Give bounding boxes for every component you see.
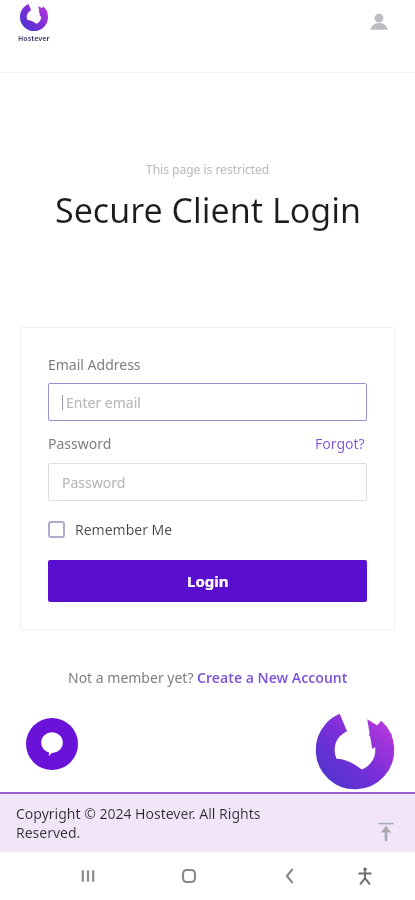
staticText: Email Address	[48, 355, 141, 374]
staticText: Login	[187, 571, 229, 591]
staticText: Remember Me	[75, 520, 173, 539]
button[interactable]: Open chat	[26, 718, 78, 770]
button[interactable]: Back	[268, 854, 312, 898]
button[interactable]: Forgot?	[313, 432, 367, 455]
button[interactable]: Home	[167, 854, 211, 898]
staticText: Copyright © 2024 Hostever. All Rights Re…	[16, 804, 325, 842]
button[interactable]: Accessibility	[343, 854, 387, 898]
button[interactable]: Account	[359, 3, 399, 43]
staticText: Secure Client Login	[55, 187, 361, 233]
button[interactable]: Enter email	[48, 383, 367, 421]
staticText: Enter email	[66, 393, 141, 412]
staticText: Not a member yet? Create a New Account	[68, 668, 348, 687]
button[interactable]: Recent apps	[66, 854, 110, 898]
button[interactable]: Login	[48, 560, 367, 602]
button[interactable]: Remember Me	[48, 517, 173, 542]
button[interactable]: Scroll to top	[369, 814, 403, 848]
button[interactable]: Hostever	[16, 0, 52, 46]
staticText: Password	[48, 434, 112, 453]
staticText: Password	[62, 473, 126, 492]
button[interactable]: Password	[48, 463, 367, 501]
staticText: Hostever	[18, 34, 50, 44]
button[interactable]: Not a member yet? Create a New Account	[60, 664, 356, 691]
staticText: This page is restricted	[146, 161, 270, 177]
staticText: Forgot?	[315, 434, 365, 453]
